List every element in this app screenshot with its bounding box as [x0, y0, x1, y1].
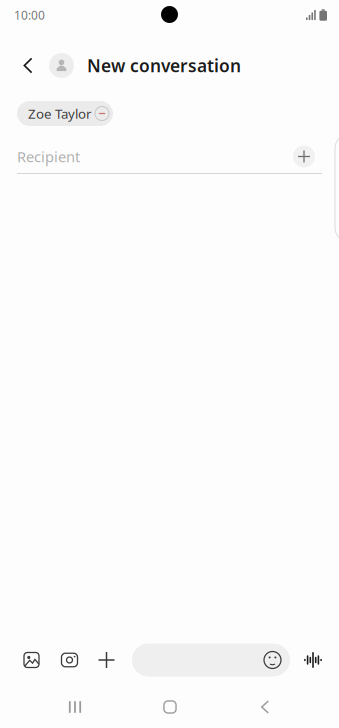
button[interactable]: Add attachment — [91, 640, 122, 680]
button[interactable]: Add recipient — [296, 143, 322, 169]
button[interactable]: Gallery — [16, 640, 47, 680]
staticText: New conversation — [87, 54, 241, 77]
button[interactable]: Home — [139, 694, 201, 720]
staticText: Recipient — [17, 147, 80, 166]
staticText: 10:00 — [14, 7, 45, 23]
button[interactable] — [132, 643, 290, 676]
button[interactable]: Back — [234, 694, 296, 720]
button[interactable]: Recents — [44, 694, 106, 720]
button[interactable]: Camera — [54, 640, 85, 680]
staticText: Zoe Taylor — [28, 105, 92, 122]
button[interactable]: Zoe Taylor — [17, 101, 113, 126]
button[interactable]: Voice message — [299, 640, 327, 680]
button[interactable]: Back — [13, 41, 43, 89]
